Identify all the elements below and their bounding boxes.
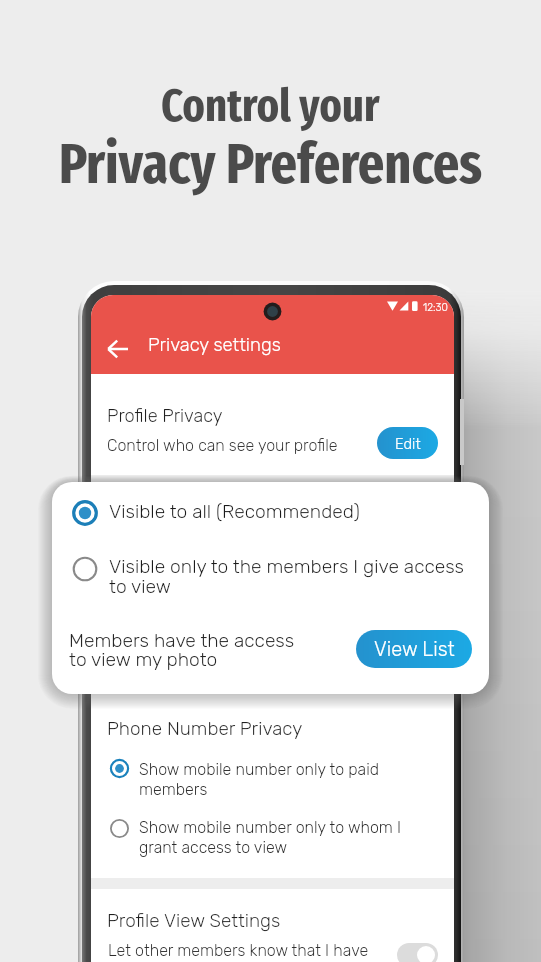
staticText: Members have the access to view my photo	[69, 629, 295, 671]
staticText: Let other members know that I have	[108, 941, 369, 960]
staticText: Control who can see your profile	[107, 436, 338, 455]
button[interactable]: Toggle profile view	[397, 943, 438, 962]
staticText: Show mobile number only to whom I grant …	[139, 818, 402, 857]
button[interactable]: Back	[99, 330, 136, 367]
staticText: View List	[374, 637, 455, 661]
staticText: Show mobile number only to paid members	[139, 760, 380, 799]
staticText: Visible to all (Recommended)	[109, 500, 360, 523]
staticText: 12:30	[423, 301, 448, 313]
staticText: Profile View Settings	[107, 909, 281, 931]
staticText: Privacy settings	[148, 334, 281, 356]
button[interactable]: Edit	[377, 427, 438, 459]
button[interactable]: Show mobile number only to paid members	[105, 754, 435, 800]
button[interactable]: Visible only to the members I give acces…	[66, 548, 478, 598]
button[interactable]: Visible to all (Recommended)	[66, 492, 476, 536]
staticText: Visible only to the members I give acces…	[109, 555, 465, 598]
staticText: Edit	[395, 435, 421, 452]
button[interactable]: View List	[356, 630, 472, 668]
staticText: Privacy Preferences	[59, 130, 483, 198]
staticText: Control your	[161, 78, 380, 133]
button[interactable]: Show mobile number only to whom I grant …	[105, 814, 435, 860]
staticText: Profile Privacy	[107, 405, 223, 427]
staticText: Phone Number Privacy	[107, 717, 303, 739]
